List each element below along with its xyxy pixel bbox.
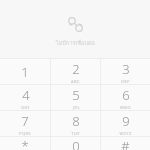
- button[interactable]: 5: [51, 85, 100, 110]
- staticText: DEF: [121, 79, 130, 84]
- button[interactable]: 8: [51, 111, 100, 136]
- staticText: *: [21, 137, 29, 150]
- staticText: WXYZ: [119, 131, 132, 136]
- button[interactable]: #: [101, 137, 150, 150]
- staticText: 7: [21, 112, 29, 130]
- staticText: ไม่มีการเชื่อมต่อ: [56, 39, 95, 48]
- staticText: 9: [122, 112, 130, 130]
- staticText: JKL: [73, 105, 80, 110]
- staticText: 1: [21, 63, 29, 81]
- other: Phone: [68, 17, 83, 32]
- button[interactable]: 6: [101, 85, 150, 110]
- button[interactable]: 7: [0, 111, 50, 136]
- staticText: 0: [72, 137, 80, 150]
- staticText: 4: [22, 86, 30, 104]
- button[interactable]: 4: [0, 85, 50, 110]
- staticText: MNO: [120, 105, 131, 110]
- staticText: TUV: [71, 131, 80, 136]
- staticText: 5: [72, 86, 80, 104]
- staticText: 2: [72, 60, 80, 78]
- button[interactable]: *: [0, 137, 50, 150]
- staticText: 6: [122, 86, 130, 104]
- staticText: PQRS: [19, 131, 31, 136]
- staticText: GHI: [21, 105, 30, 110]
- button[interactable]: 0: [51, 137, 100, 150]
- staticText: #: [121, 137, 130, 150]
- button[interactable]: 1: [0, 59, 50, 84]
- staticText: 3: [122, 60, 130, 78]
- button[interactable]: 3: [101, 59, 150, 84]
- button[interactable]: 2: [51, 59, 100, 84]
- button[interactable]: 9: [101, 111, 150, 136]
- staticText: ABC: [71, 79, 80, 84]
- staticText: 8: [72, 112, 80, 130]
